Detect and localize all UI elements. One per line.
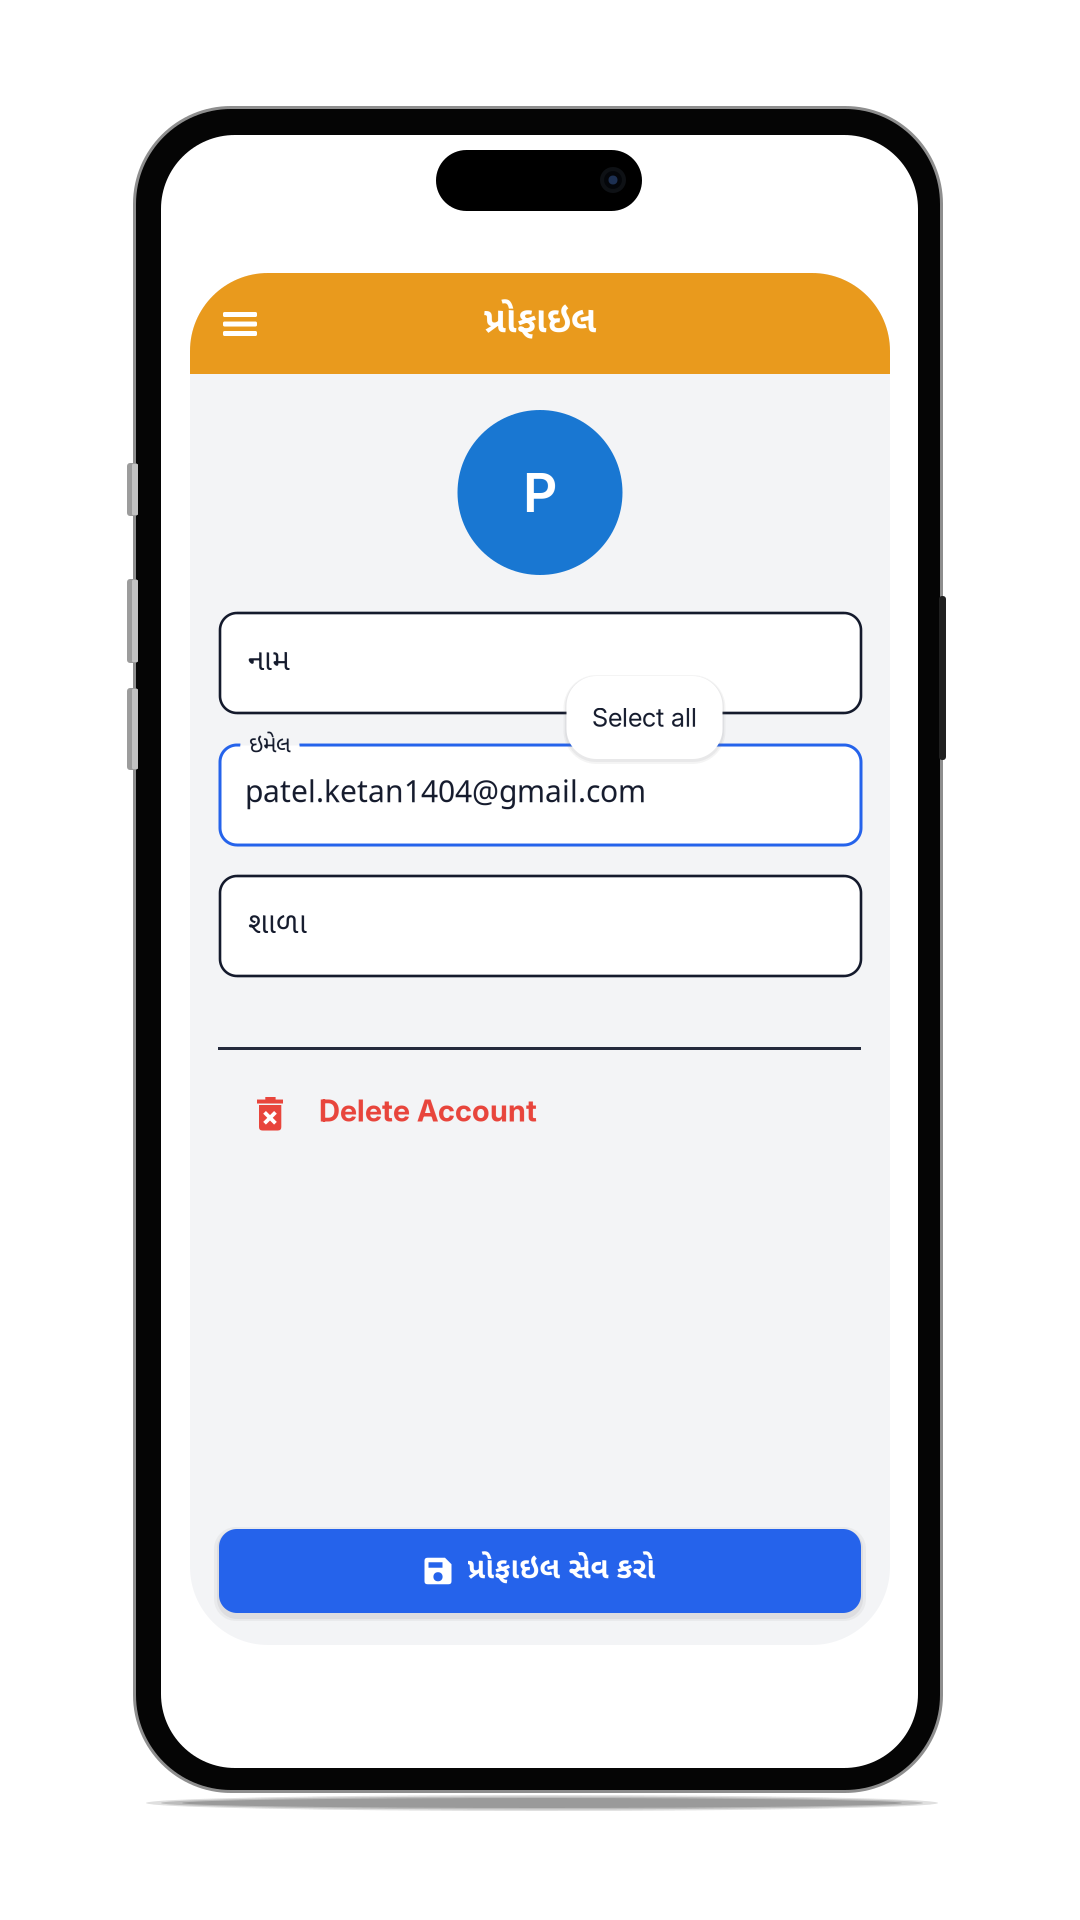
staticText: P (523, 460, 557, 525)
button[interactable]: પ્રોફાઇલ સેવ કરો (219, 1529, 861, 1613)
staticText: શાળા (248, 906, 307, 945)
staticText: પ્રોફાઇલ સેવ કરો (467, 1552, 655, 1590)
button[interactable]: નામ (220, 613, 861, 713)
staticText: patel.ketan1404@gmail.com (245, 775, 646, 814)
staticText: નામ (248, 643, 290, 682)
button[interactable]: શાળા (220, 876, 861, 976)
button[interactable]: Select all (566, 676, 722, 759)
staticText: પ્રોફાઇલ (484, 300, 596, 347)
button[interactable]: Menu (212, 296, 268, 352)
button[interactable]: Delete Account (257, 1087, 587, 1127)
staticText: Delete Account (319, 1093, 537, 1128)
staticText: ઇમેલ (249, 732, 291, 762)
button[interactable]: patel.ketan1404@gmail.com (220, 745, 861, 845)
staticText: Select all (592, 702, 697, 733)
